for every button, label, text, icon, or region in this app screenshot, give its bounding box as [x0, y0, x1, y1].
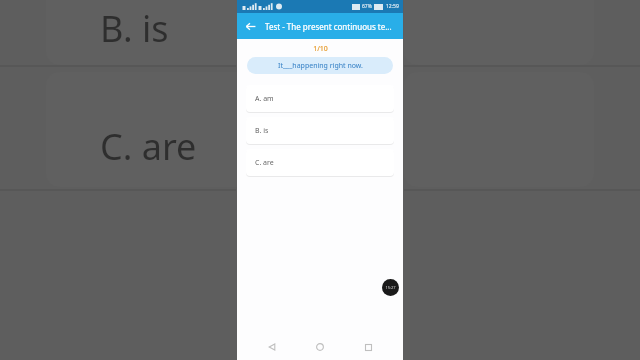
- button[interactable]: Back: [237, 13, 263, 39]
- button[interactable]: Recents: [355, 334, 381, 360]
- staticText: Test - The present continuous te...: [265, 21, 392, 32]
- button[interactable]: C. are: [246, 149, 394, 176]
- staticText: B. is: [100, 4, 169, 53]
- button[interactable]: Back: [259, 334, 285, 360]
- staticText: 15:27: [385, 285, 396, 290]
- staticText: A. am: [255, 94, 274, 104]
- staticText: 1/10: [313, 44, 328, 54]
- button[interactable]: Home: [307, 334, 333, 360]
- other: Watermark: [382, 279, 399, 296]
- staticText: It___happening right now.: [278, 61, 363, 71]
- button[interactable]: It___happening right now.: [247, 57, 393, 74]
- staticText: 67%: [362, 3, 372, 10]
- staticText: B. is: [255, 126, 269, 136]
- staticText: C. are: [255, 158, 274, 168]
- staticText: 12:59: [386, 3, 399, 10]
- button[interactable]: A. am: [246, 85, 394, 112]
- button[interactable]: B. is: [246, 117, 394, 144]
- staticText: C. are: [100, 122, 197, 171]
